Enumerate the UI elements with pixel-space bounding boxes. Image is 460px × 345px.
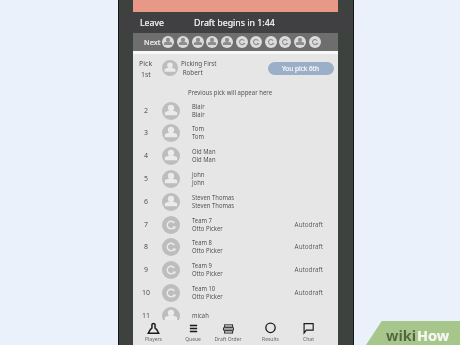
- staticText: Pick: [139, 59, 153, 69]
- staticText: Tom Tom: [192, 124, 205, 141]
- staticText: 1st: [141, 70, 151, 77]
- staticText: Previous pick will appear here: [188, 88, 272, 98]
- button[interactable]: Queue: [173, 322, 213, 343]
- staticText: Players: [145, 336, 162, 343]
- button[interactable]: 4: [133, 144, 338, 167]
- button[interactable]: You pick 6th: [268, 62, 334, 75]
- staticText: 4: [144, 151, 149, 161]
- staticText: 8: [144, 242, 149, 252]
- button[interactable]: Player 2: [162, 36, 174, 48]
- button[interactable]: Player 11: [294, 36, 306, 48]
- staticText: Autodraft: [295, 242, 323, 252]
- button[interactable]: 6: [133, 190, 338, 213]
- button[interactable]: Player 12: [309, 36, 321, 48]
- button[interactable]: 5: [133, 167, 338, 190]
- staticText: Draft Order: [214, 336, 242, 343]
- staticText: 11: [142, 311, 151, 321]
- button[interactable]: Player 10: [279, 36, 291, 48]
- staticText: 2: [144, 106, 149, 116]
- staticText: wiki: [386, 325, 417, 345]
- button[interactable]: 11: [133, 304, 338, 327]
- button[interactable]: 9: [133, 258, 338, 281]
- button[interactable]: Player 8: [250, 36, 262, 48]
- button[interactable]: Player 9: [265, 36, 277, 48]
- staticText: 3: [144, 128, 149, 138]
- staticText: You pick 6th: [282, 64, 320, 73]
- staticText: Leave: [140, 17, 164, 29]
- staticText: 7: [144, 220, 149, 230]
- staticText: Blair Blair: [192, 102, 205, 119]
- button[interactable]: Chat: [288, 322, 328, 343]
- button[interactable]: 3: [133, 121, 338, 144]
- button[interactable]: Player 6: [221, 36, 233, 48]
- button[interactable]: Player 5: [206, 36, 218, 48]
- button[interactable]: 2: [133, 99, 338, 122]
- staticText: Picking First Robert: [181, 59, 217, 77]
- staticText: Next: [144, 37, 161, 47]
- button[interactable]: Players: [133, 322, 173, 343]
- staticText: Team 7 Otto Picker: [192, 216, 223, 233]
- button[interactable]: Draft Order: [208, 322, 248, 343]
- staticText: Results: [262, 336, 279, 343]
- button[interactable]: 8: [133, 235, 338, 258]
- button[interactable]: Player 7: [236, 36, 248, 48]
- button[interactable]: Leave: [140, 12, 164, 33]
- staticText: 10: [142, 288, 151, 298]
- staticText: John John: [192, 170, 205, 187]
- staticText: Team 9 Otto Picker: [192, 261, 223, 278]
- button[interactable]: Player 4: [192, 36, 204, 48]
- staticText: Autodraft: [295, 288, 323, 298]
- staticText: Team 8 Otto Picker: [192, 238, 223, 255]
- button[interactable]: 10: [133, 281, 338, 304]
- staticText: How: [417, 325, 450, 345]
- staticText: 9: [144, 265, 149, 275]
- staticText: micah: [192, 311, 209, 321]
- button[interactable]: Results: [250, 322, 290, 343]
- staticText: Old Man Old Man: [192, 147, 215, 164]
- staticText: 5: [144, 174, 149, 184]
- staticText: Team 10 Otto Picker: [192, 284, 223, 301]
- button[interactable]: Player 3: [177, 36, 189, 48]
- staticText: Queue: [185, 336, 201, 343]
- staticText: Chat: [303, 336, 314, 343]
- button[interactable]: 7: [133, 213, 338, 236]
- staticText: 6: [144, 197, 149, 207]
- staticText: Autodraft: [295, 265, 323, 275]
- staticText: Autodraft: [295, 220, 323, 230]
- staticText: Steven Thomas Steven Thomas: [192, 193, 235, 210]
- staticText: Draft begins in 1:44: [194, 17, 275, 29]
